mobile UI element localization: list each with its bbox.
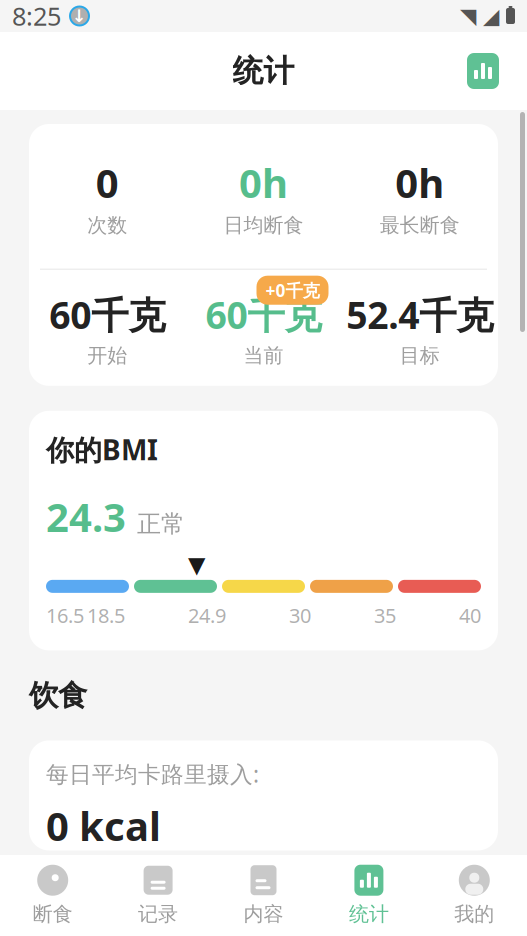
- staticText: ▼: [188, 552, 205, 578]
- staticText: 目标: [400, 343, 440, 368]
- staticText: 0h: [395, 156, 444, 209]
- staticText: +0千克: [265, 279, 319, 302]
- staticText: 24.3: [46, 490, 126, 543]
- staticText: 我的: [454, 902, 494, 926]
- staticText: 0: [96, 156, 119, 209]
- staticText: ◥: [460, 4, 476, 28]
- button[interactable]: 记录: [105, 857, 211, 934]
- staticText: 60千克: [49, 290, 165, 339]
- staticText: 饮食: [29, 677, 87, 713]
- button[interactable]: 统计: [316, 857, 422, 934]
- staticText: 每日平均卡路里摄入:: [46, 759, 259, 789]
- staticText: 统计: [349, 902, 389, 926]
- button[interactable]: 我的: [422, 857, 527, 934]
- staticText: 内容: [243, 902, 283, 926]
- staticText: 统计: [232, 52, 294, 90]
- staticText: 60千克: [205, 290, 321, 339]
- staticText: 记录: [138, 902, 178, 926]
- staticText: ◢: [483, 4, 499, 28]
- staticText: 正常: [137, 509, 185, 539]
- staticText: 日均断食: [223, 213, 303, 238]
- staticText: 40: [459, 602, 481, 628]
- staticText: 8:25: [12, 0, 61, 33]
- staticText: 0 kcal: [46, 799, 161, 852]
- staticText: 30: [289, 602, 311, 628]
- staticText: 24.9: [188, 602, 226, 628]
- staticText: 你的BMI: [46, 431, 158, 468]
- staticText: 52.4千克: [346, 290, 493, 339]
- staticText: 次数: [87, 213, 127, 238]
- button[interactable]: 图表: [467, 53, 499, 89]
- button[interactable]: 内容: [211, 857, 316, 934]
- staticText: 最长断食: [380, 213, 460, 238]
- staticText: 18.5: [87, 602, 125, 628]
- staticText: 当前: [243, 343, 283, 368]
- staticText: 35: [374, 602, 396, 628]
- staticText: 开始: [87, 343, 127, 368]
- staticText: 断食: [33, 902, 73, 926]
- staticText: 16.5: [46, 602, 84, 628]
- button[interactable]: 断食: [0, 857, 105, 934]
- staticText: 0h: [239, 156, 288, 209]
- staticText: ↓: [72, 6, 87, 26]
